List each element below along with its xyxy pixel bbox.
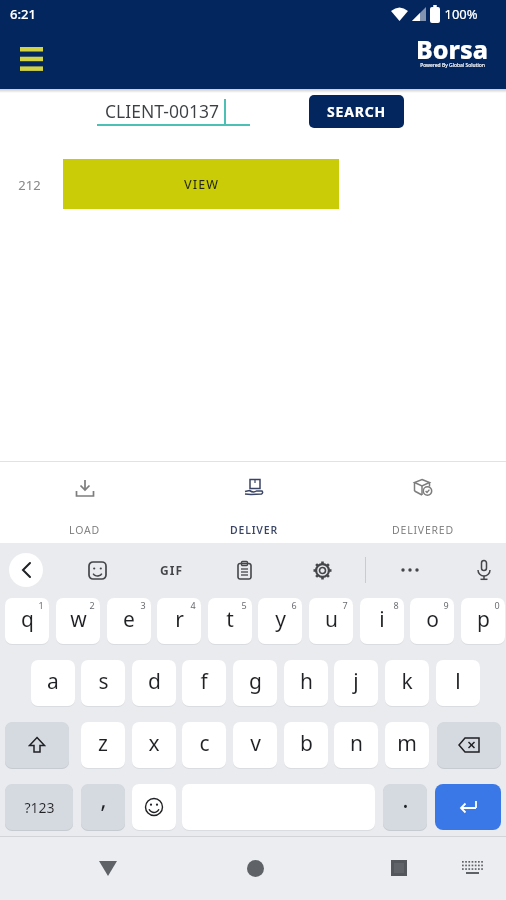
staticText: 100% — [444, 5, 478, 23]
button[interactable]: SEARCH — [309, 95, 404, 128]
staticText: m — [397, 729, 417, 758]
button[interactable]: f — [182, 660, 226, 706]
button[interactable]: m — [385, 722, 429, 768]
staticText: h — [300, 667, 313, 696]
staticText: w — [70, 605, 87, 634]
button[interactable]: g — [233, 660, 277, 706]
staticText: 3 — [140, 599, 146, 611]
button[interactable]: u — [309, 598, 353, 644]
staticText: g — [249, 667, 262, 696]
staticText: l — [455, 667, 461, 696]
staticText: a — [47, 667, 59, 696]
button[interactable] — [450, 848, 494, 888]
staticText: 0 — [494, 599, 500, 611]
button[interactable] — [375, 846, 423, 890]
staticText: CLIENT-00137 — [105, 99, 219, 123]
staticText: p — [477, 605, 490, 634]
staticText: Powered By Global Solution — [420, 62, 485, 69]
button[interactable]: , — [81, 784, 125, 830]
button[interactable] — [84, 846, 132, 890]
button[interactable]: e — [107, 598, 151, 644]
button[interactable]: b — [284, 722, 328, 768]
staticText: k — [401, 667, 413, 696]
staticText: f — [200, 667, 208, 696]
staticText: o — [426, 605, 439, 634]
staticText: y — [275, 605, 286, 634]
button[interactable]: j — [334, 660, 378, 706]
button[interactable] — [435, 784, 501, 830]
button[interactable]: LOAD — [16, 462, 153, 543]
button[interactable] — [303, 551, 341, 589]
button[interactable]: h — [284, 660, 328, 706]
button[interactable]: VIEW — [63, 159, 339, 209]
button[interactable]: d — [132, 660, 176, 706]
staticText: DELIVER — [230, 523, 278, 537]
button[interactable] — [391, 551, 429, 589]
button[interactable]: DELIVERED — [354, 462, 491, 543]
button[interactable] — [437, 722, 501, 768]
button[interactable]: l — [436, 660, 480, 706]
staticText: i — [379, 605, 385, 634]
staticText: u — [325, 605, 338, 634]
button[interactable]: DELIVER — [185, 462, 322, 543]
button[interactable]: GIF — [152, 551, 190, 589]
button[interactable]: x — [132, 722, 176, 768]
button[interactable]: q — [5, 598, 49, 644]
button[interactable] — [231, 846, 279, 890]
staticText: s — [98, 667, 109, 696]
button[interactable] — [9, 553, 43, 587]
staticText: 9 — [443, 599, 449, 611]
staticText: 212 — [18, 176, 41, 194]
button[interactable] — [132, 784, 176, 830]
staticText: t — [226, 605, 234, 634]
button[interactable]: r — [157, 598, 201, 644]
staticText: GIF — [160, 562, 183, 578]
staticText: LOAD — [69, 523, 100, 537]
staticText: 4 — [190, 599, 196, 611]
staticText: DELIVERED — [392, 523, 454, 537]
button[interactable] — [8, 36, 54, 82]
staticText: e — [123, 605, 135, 634]
staticText: 5 — [241, 599, 247, 611]
staticText: v — [250, 729, 261, 758]
staticText: j — [353, 667, 359, 696]
staticText: 8 — [393, 599, 399, 611]
staticText: 1 — [38, 599, 44, 611]
button[interactable]: n — [334, 722, 378, 768]
button[interactable]: v — [233, 722, 277, 768]
staticText: Borsa — [416, 32, 488, 66]
button[interactable] — [5, 722, 69, 768]
staticText: b — [300, 729, 313, 758]
button[interactable]: p — [461, 598, 505, 644]
staticText: SEARCH — [327, 102, 386, 121]
staticText: ?123 — [24, 798, 55, 817]
button[interactable]: a — [31, 660, 75, 706]
staticText: c — [199, 729, 210, 758]
button[interactable]: z — [81, 722, 125, 768]
button[interactable]: k — [385, 660, 429, 706]
button[interactable]: s — [81, 660, 125, 706]
staticText: r — [175, 605, 184, 634]
button[interactable] — [78, 551, 116, 589]
button[interactable]: i — [360, 598, 404, 644]
staticText: n — [350, 729, 363, 758]
button[interactable]: . — [383, 784, 427, 830]
staticText: 6 — [291, 599, 297, 611]
staticText: q — [21, 605, 34, 634]
staticText: z — [98, 729, 108, 758]
button[interactable] — [465, 551, 503, 589]
button[interactable]: o — [410, 598, 454, 644]
button[interactable]: ?123 — [5, 784, 73, 830]
staticText: VIEW — [184, 176, 219, 193]
staticText: 6:21 — [10, 5, 36, 23]
staticText: , — [100, 784, 107, 815]
button[interactable]: c — [182, 722, 226, 768]
button[interactable] — [225, 551, 263, 589]
button[interactable]: y — [258, 598, 302, 644]
staticText: 7 — [342, 599, 348, 611]
button[interactable]: w — [56, 598, 100, 644]
button[interactable]: t — [208, 598, 252, 644]
staticText: 2 — [89, 599, 95, 611]
staticText: d — [148, 667, 161, 696]
